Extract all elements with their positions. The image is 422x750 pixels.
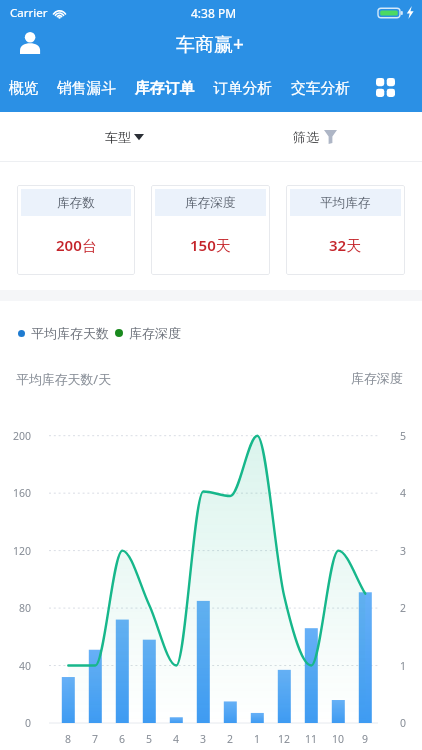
staticText: 库存深度: [185, 195, 236, 211]
staticText: 3: [200, 732, 207, 746]
staticText: 订单分析: [213, 79, 273, 98]
staticText: 0: [25, 716, 32, 730]
staticText: 40: [19, 659, 32, 673]
staticText: 平均库存天数/天: [16, 370, 112, 388]
staticText: 库存深度: [351, 371, 403, 387]
button[interactable]: 销售漏斗: [48, 71, 126, 106]
staticText: 车型: [105, 129, 131, 145]
staticText: 筛选: [293, 129, 319, 145]
staticText: 8: [65, 732, 72, 746]
button[interactable]: 库存数: [17, 185, 135, 275]
staticText: 200台: [56, 235, 97, 255]
staticText: 120: [13, 544, 32, 558]
staticText: 1: [400, 659, 407, 673]
staticText: 平均库存天数: [31, 325, 109, 341]
button[interactable]: Profile: [18, 26, 42, 58]
staticText: 库存订单: [135, 79, 195, 98]
staticText: 160: [13, 486, 32, 500]
staticText: 交车分析: [291, 79, 351, 98]
staticText: 销售漏斗: [57, 79, 117, 98]
button[interactable]: 平均库存: [286, 185, 405, 275]
staticText: 7: [92, 732, 99, 746]
staticText: 3: [400, 544, 407, 558]
staticText: 库存数: [57, 195, 95, 211]
button[interactable]: 概览: [0, 71, 48, 106]
staticText: 4:38 PM: [191, 5, 237, 21]
staticText: 6: [119, 732, 126, 746]
staticText: 4: [400, 486, 407, 500]
button[interactable]: 车型: [101, 125, 148, 149]
button[interactable]: 交车分析: [282, 71, 360, 106]
staticText: 2: [400, 601, 407, 615]
staticText: 车商赢+: [176, 31, 244, 57]
staticText: 2: [227, 732, 234, 746]
staticText: Carrier: [10, 5, 48, 21]
staticText: 200: [13, 429, 32, 443]
staticText: 5: [146, 732, 153, 746]
button[interactable]: 筛选: [289, 125, 341, 149]
staticText: 概览: [9, 79, 39, 98]
staticText: 5: [400, 429, 407, 443]
staticText: 32天: [329, 235, 362, 255]
staticText: 150天: [190, 235, 231, 255]
button[interactable]: 库存订单: [126, 71, 204, 106]
staticText: 1: [254, 732, 261, 746]
staticText: 12: [278, 732, 291, 746]
staticText: 库存深度: [129, 325, 181, 341]
staticText: 80: [19, 601, 32, 615]
button[interactable]: 库存深度: [151, 185, 270, 275]
staticText: 0: [400, 716, 407, 730]
staticText: 9: [362, 732, 369, 746]
button[interactable]: Grid menu: [371, 74, 399, 102]
staticText: 10: [332, 732, 345, 746]
staticText: 4: [173, 732, 180, 746]
staticText: 平均库存: [320, 195, 371, 211]
staticText: 11: [305, 732, 318, 746]
button[interactable]: 订单分析: [204, 71, 282, 106]
